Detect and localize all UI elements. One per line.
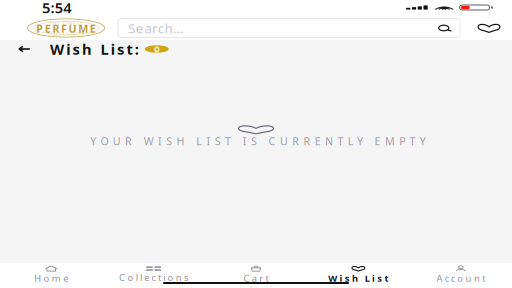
- button[interactable]: Home: [0, 267, 102, 283]
- staticText: 5:54: [42, 0, 71, 17]
- staticText: 0: [154, 43, 159, 55]
- button[interactable]: Back: [17, 43, 32, 55]
- button[interactable]: Cart: [205, 267, 307, 283]
- button[interactable]: Wish List: [307, 267, 410, 283]
- staticText: YOUR WISH LIST IS CURRENTLY EMPTY: [90, 134, 426, 148]
- staticText: THE FINEST: [49, 20, 83, 27]
- button[interactable]: Search: [118, 18, 460, 37]
- button[interactable]: Perfume, home: [27, 18, 105, 38]
- button[interactable]: Wish List: [477, 18, 501, 38]
- staticText: Search...: [128, 19, 187, 37]
- staticText: Wish List:: [50, 39, 139, 59]
- staticText: Wish List: [328, 272, 389, 284]
- staticText: Home: [34, 272, 68, 284]
- staticText: PERFUME: [36, 21, 96, 36]
- button[interactable]: Collections: [102, 267, 205, 283]
- staticText: COLLECTION: [48, 30, 84, 37]
- button[interactable]: Account: [410, 267, 512, 283]
- staticText: Cart: [244, 272, 268, 284]
- staticText: Collections: [119, 271, 188, 284]
- staticText: Account: [436, 272, 485, 284]
- button[interactable]: 0 saved items: [145, 43, 169, 55]
